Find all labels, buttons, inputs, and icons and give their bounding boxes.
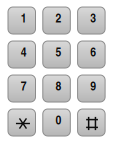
staticText: 0: [55, 110, 61, 128]
staticText: 1: [21, 8, 27, 26]
button[interactable]: Pound: [78, 109, 105, 136]
button[interactable]: 6: [78, 41, 105, 68]
staticText: 9: [90, 76, 96, 94]
staticText: 6: [90, 42, 96, 60]
button[interactable]: 4: [8, 41, 35, 68]
button[interactable]: 2: [43, 7, 70, 34]
staticText: 4: [21, 42, 27, 60]
button[interactable]: Star: [8, 109, 35, 136]
staticText: 2: [55, 8, 61, 26]
button[interactable]: 9: [78, 75, 105, 102]
staticText: 7: [21, 76, 27, 94]
staticText: 3: [90, 8, 96, 26]
button[interactable]: 3: [78, 7, 105, 34]
button[interactable]: 0: [43, 109, 70, 136]
staticText: 5: [55, 42, 61, 60]
button[interactable]: 7: [8, 75, 35, 102]
button[interactable]: 5: [43, 41, 70, 68]
button[interactable]: 1: [8, 7, 35, 34]
button[interactable]: 8: [43, 75, 70, 102]
staticText: 8: [55, 76, 61, 94]
